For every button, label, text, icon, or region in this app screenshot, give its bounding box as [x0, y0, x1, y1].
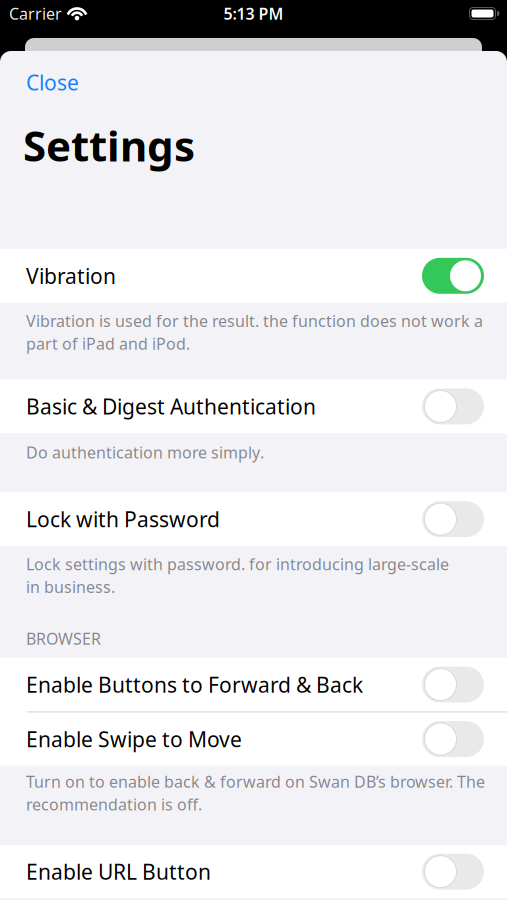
staticText: Vibration	[26, 261, 116, 290]
staticText: Enable Buttons to Forward & Back	[26, 670, 363, 699]
button[interactable]: Vibration	[422, 258, 484, 294]
staticText: part of iPad and iPod.	[26, 333, 190, 354]
button[interactable]: Lock with Password	[422, 501, 484, 537]
staticText: Vibration is used for the result. the fu…	[26, 310, 483, 332]
staticText: Enable URL Button	[26, 857, 211, 886]
button[interactable]: Enable Swipe to Move	[422, 721, 484, 757]
staticText: Basic & Digest Authentication	[26, 392, 316, 421]
button[interactable]: Enable Buttons to Forward & Back	[422, 667, 484, 703]
staticText: Carrier	[9, 3, 62, 24]
staticText: 5:13 PM	[223, 3, 283, 24]
staticText: Lock settings with password. for introdu…	[26, 553, 449, 575]
button[interactable]: Basic & Digest Authentication	[422, 388, 484, 424]
staticText: Settings	[23, 117, 195, 174]
staticText: BROWSER	[26, 628, 101, 650]
staticText: Enable Swipe to Move	[26, 725, 242, 753]
staticText: Close	[26, 68, 79, 97]
staticText: recommendation is off.	[26, 793, 202, 815]
button[interactable]: Close	[26, 68, 79, 97]
button[interactable]: Enable URL Button	[422, 854, 484, 890]
staticText: Do authentication more simply.	[26, 441, 264, 463]
staticText: in business.	[26, 576, 115, 598]
staticText: Lock with Password	[26, 505, 220, 533]
staticText: Turn on to enable back & forward on Swan…	[26, 771, 485, 792]
